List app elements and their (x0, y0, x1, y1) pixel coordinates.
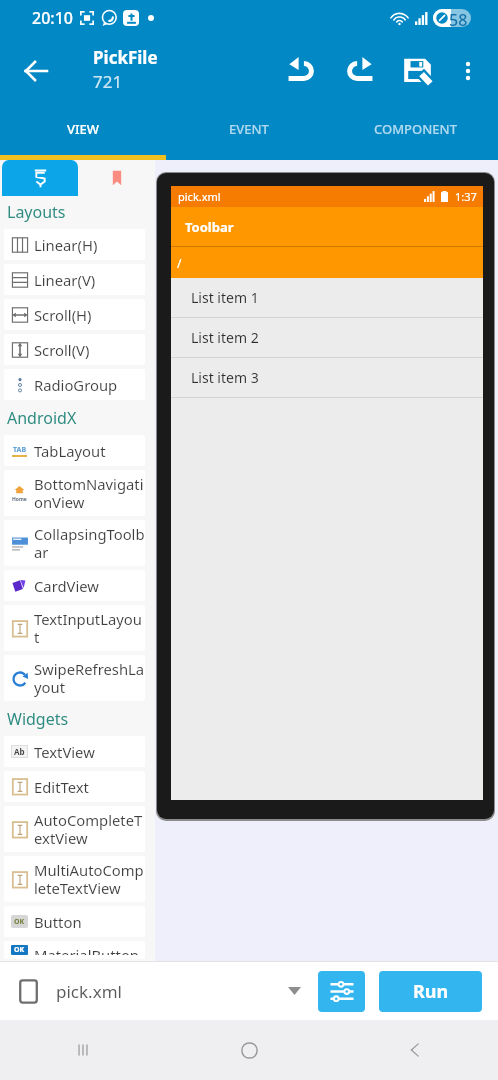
staticText: List item 2 (191, 328, 259, 347)
staticText: pick.xml (178, 189, 221, 204)
staticText: Linear(H) (34, 235, 98, 255)
staticText: pick.xml (56, 980, 122, 1003)
button[interactable]: Undo (274, 43, 330, 99)
staticText: 20:10 (32, 7, 73, 29)
button[interactable]: EditText (4, 771, 145, 802)
staticText: CardView (34, 576, 99, 596)
button[interactable]: AutoCompleteTextView (4, 806, 145, 852)
staticText: / (177, 255, 182, 271)
button[interactable]: Run (379, 971, 482, 1012)
button[interactable]: Scroll(H) (4, 299, 145, 330)
button[interactable]: Redo (330, 42, 388, 100)
staticText: Home (12, 496, 27, 503)
staticText: TextView (34, 742, 95, 762)
staticText: Scroll(H) (34, 305, 92, 325)
staticText: 58 (449, 9, 468, 27)
staticText: 721 (93, 70, 123, 93)
button[interactable]: Recent apps (0, 1020, 166, 1080)
button[interactable]: RadioGroup (4, 369, 145, 400)
staticText: List item 3 (191, 368, 259, 387)
button[interactable]: Linear(V) (4, 264, 145, 295)
staticText: PickFile (93, 46, 158, 69)
button[interactable]: MultiAutoCompleteTextView (4, 856, 145, 902)
staticText: Ab (14, 746, 25, 757)
button[interactable]: CardView (4, 570, 145, 601)
button[interactable]: Widgets palette (2, 160, 78, 196)
staticText: Linear(V) (34, 270, 96, 290)
staticText: Toolbar (185, 218, 234, 236)
staticText: Button (34, 912, 82, 932)
staticText: EditText (34, 777, 89, 797)
button[interactable]: CollapsingToolbar (4, 520, 145, 566)
button[interactable]: More options (446, 49, 490, 93)
staticText: TextInputLayout (34, 609, 145, 647)
staticText: SwipeRefreshLayout (34, 659, 145, 697)
button[interactable]: Select file (276, 973, 312, 1009)
button[interactable]: pick.xml (0, 962, 276, 1020)
button[interactable]: Save (388, 42, 446, 100)
staticText: CollapsingToolbar (34, 524, 145, 562)
staticText: OK (14, 917, 25, 927)
button[interactable]: Favourites (79, 160, 155, 196)
button[interactable]: TAB (4, 435, 145, 466)
button[interactable]: OK (4, 941, 145, 959)
staticText: MaterialButton (34, 945, 139, 955)
staticText: AutoCompleteTextView (34, 810, 145, 848)
staticText: OK (14, 945, 25, 955)
staticText: TabLayout (34, 441, 106, 461)
button[interactable]: SwipeRefreshLayout (4, 655, 145, 701)
staticText: BottomNavigationView (34, 474, 145, 512)
staticText: RadioGroup (34, 375, 118, 395)
button[interactable]: Linear(H) (4, 229, 145, 260)
staticText: TAB (13, 445, 27, 455)
button[interactable]: Back (12, 47, 60, 95)
button[interactable]: Home (166, 1020, 332, 1080)
button[interactable]: Back (332, 1020, 498, 1080)
staticText: Run (413, 979, 449, 1004)
button[interactable]: Home (4, 470, 145, 516)
staticText: 1:37 (455, 189, 477, 204)
staticText: Scroll(V) (34, 340, 90, 360)
button[interactable]: Project settings (318, 971, 365, 1012)
staticText: AndroidX (7, 407, 77, 429)
button[interactable]: COMPONENT (332, 105, 498, 153)
staticText: Layouts (7, 201, 66, 223)
button[interactable]: Scroll(V) (4, 334, 145, 365)
button[interactable]: VIEW (0, 105, 166, 153)
staticText: Widgets (7, 708, 69, 730)
button[interactable]: EVENT (166, 105, 332, 153)
button[interactable]: OK (4, 906, 145, 937)
staticText: VIEW (67, 120, 100, 138)
staticText: List item 1 (191, 288, 259, 307)
staticText: MultiAutoCompleteTextView (34, 860, 145, 898)
button[interactable]: Ab (4, 736, 145, 767)
button[interactable]: TextInputLayout (4, 605, 145, 651)
staticText: COMPONENT (374, 120, 457, 138)
staticText: EVENT (229, 120, 269, 138)
